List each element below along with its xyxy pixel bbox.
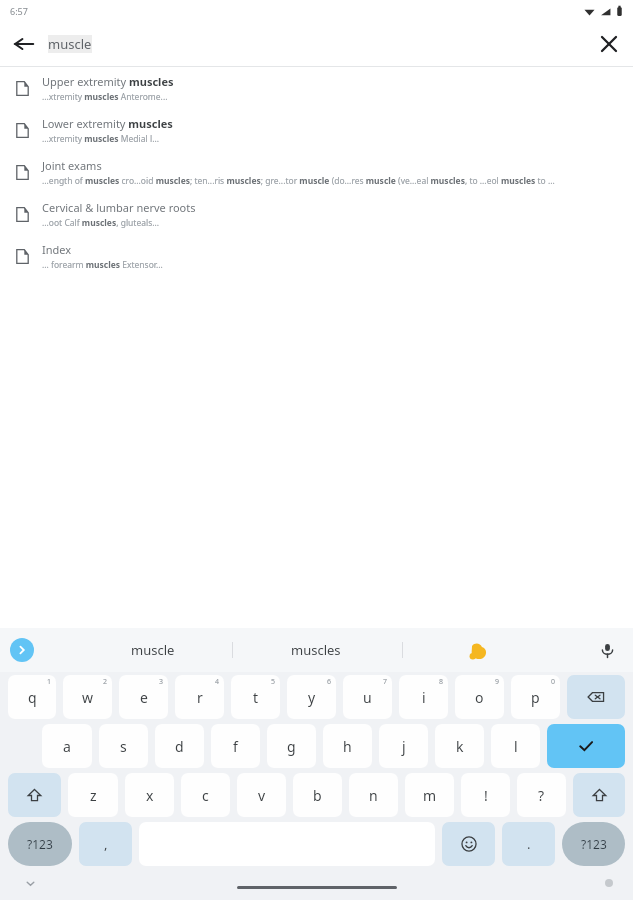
staticText: ... forearm muscles Extensor... [42, 259, 163, 271]
staticText: ...xtremity muscles Anterome... [42, 91, 168, 103]
staticText: x [146, 786, 154, 805]
button[interactable]: Cervical & lumbar nerve roots [0, 193, 633, 235]
button[interactable]: Enter [547, 724, 625, 768]
staticText: 1 [47, 677, 52, 687]
staticText: Cervical & lumbar nerve roots [42, 200, 196, 215]
staticText: muscle [131, 641, 175, 659]
button[interactable]: e [119, 675, 168, 719]
staticText: k [456, 737, 464, 756]
staticText: ?123 [27, 836, 53, 852]
button[interactable]: h [323, 724, 372, 768]
button[interactable]: ?123 [562, 822, 625, 866]
staticText: l [514, 737, 518, 756]
button[interactable]: q [8, 675, 56, 719]
button[interactable]: l [491, 724, 540, 768]
button[interactable]: j [379, 724, 428, 768]
staticText: 3 [159, 677, 164, 687]
staticText: 7 [383, 677, 388, 687]
button[interactable]: f [211, 724, 260, 768]
staticText: Upper extremity muscles [42, 74, 174, 89]
button[interactable]: Hide keyboard [18, 871, 42, 895]
button[interactable]: r [175, 675, 224, 719]
button[interactable]: u [343, 675, 392, 719]
button[interactable]: k [435, 724, 484, 768]
button[interactable]: d [155, 724, 204, 768]
button[interactable]: Index [0, 235, 633, 277]
staticText: j [402, 737, 406, 756]
staticText: g [287, 737, 296, 756]
staticText: Lower extremity muscles [42, 116, 173, 131]
staticText: . [527, 835, 531, 853]
staticText: r [197, 688, 203, 707]
staticText: p [531, 688, 540, 707]
button[interactable]: Muscle emoji [456, 628, 500, 672]
button[interactable]: . [502, 822, 555, 866]
staticText: 4 [215, 677, 220, 687]
button[interactable]: y [287, 675, 336, 719]
staticText: ? [538, 786, 545, 805]
button[interactable]: muscle [48, 35, 585, 53]
button[interactable]: i [399, 675, 448, 719]
button[interactable]: Clear search [585, 22, 633, 66]
staticText: b [313, 786, 322, 805]
button[interactable]: ! [461, 773, 510, 817]
button[interactable]: ? [517, 773, 566, 817]
button[interactable]: a [42, 724, 92, 768]
button[interactable]: g [267, 724, 316, 768]
button[interactable]: x [125, 773, 174, 817]
staticText: a [63, 737, 71, 756]
button[interactable]: Backspace [567, 675, 625, 719]
button[interactable]: s [99, 724, 148, 768]
staticText: Joint exams [42, 158, 102, 173]
staticText: 2 [103, 677, 108, 687]
staticText: 0 [551, 677, 556, 687]
button[interactable]: Keyboard settings [599, 873, 619, 893]
button[interactable]: Voice input [589, 632, 625, 668]
staticText: v [258, 786, 266, 805]
button[interactable]: muscle [105, 628, 200, 672]
staticText: d [175, 737, 184, 756]
staticText: muscle [48, 35, 92, 53]
staticText: 6:57 [10, 5, 28, 17]
button[interactable]: ?123 [8, 822, 72, 866]
button[interactable]: z [68, 773, 118, 817]
button[interactable]: Shift [573, 773, 625, 817]
button[interactable]: muscles [268, 628, 363, 672]
button[interactable]: t [231, 675, 280, 719]
staticText: y [308, 688, 316, 707]
staticText: ! [484, 786, 488, 805]
button[interactable]: o [455, 675, 504, 719]
staticText: f [233, 737, 238, 756]
button[interactable]: , [79, 822, 132, 866]
button[interactable]: Shift [8, 773, 61, 817]
button[interactable]: m [405, 773, 454, 817]
button[interactable]: More suggestions [10, 638, 34, 662]
staticText: ...oot Calf muscles, gluteals... [42, 217, 160, 229]
staticText: 5 [271, 677, 276, 687]
button[interactable]: v [237, 773, 286, 817]
staticText: , [104, 835, 108, 853]
staticText: s [120, 737, 127, 756]
button[interactable]: b [293, 773, 342, 817]
button[interactable]: w [63, 675, 112, 719]
staticText: w [82, 688, 94, 707]
staticText: ?123 [581, 836, 607, 852]
button[interactable]: Back [0, 22, 48, 66]
button[interactable]: Upper extremity muscles [0, 67, 633, 109]
staticText: 6 [327, 677, 332, 687]
staticText: i [422, 688, 426, 707]
staticText: z [90, 786, 97, 805]
button[interactable]: c [181, 773, 230, 817]
button[interactable]: Emoji [442, 822, 495, 866]
button[interactable]: Joint exams [0, 151, 633, 193]
button[interactable]: n [349, 773, 398, 817]
staticText: ...xtremity muscles Medial l... [42, 133, 159, 145]
staticText: o [475, 688, 484, 707]
staticText: c [202, 786, 209, 805]
button[interactable]: Lower extremity muscles [0, 109, 633, 151]
button[interactable]: p [511, 675, 560, 719]
staticText: q [28, 688, 37, 707]
staticText: n [369, 786, 378, 805]
staticText: t [253, 688, 259, 707]
